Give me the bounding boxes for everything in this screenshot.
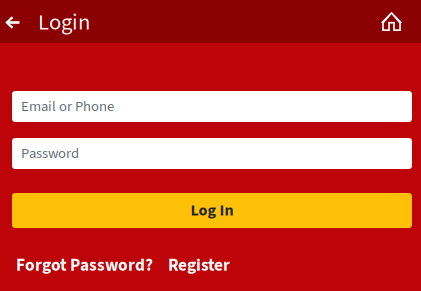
button[interactable]: Log In	[12, 193, 412, 228]
button[interactable]: Home	[381, 0, 421, 43]
staticText: Log In	[190, 199, 233, 222]
staticText: Password	[21, 143, 79, 164]
staticText: Forgot Password?	[16, 253, 153, 278]
button[interactable]: Email or Phone	[12, 91, 412, 122]
button[interactable]: Password	[12, 138, 412, 169]
button[interactable]: Register	[168, 253, 230, 278]
button[interactable]: Login	[25, 0, 100, 43]
button[interactable]: Back	[0, 0, 25, 43]
staticText: Login	[38, 6, 90, 39]
staticText: Register	[168, 253, 230, 278]
staticText: Email or Phone	[21, 96, 114, 117]
button[interactable]: Forgot Password?	[16, 253, 153, 278]
